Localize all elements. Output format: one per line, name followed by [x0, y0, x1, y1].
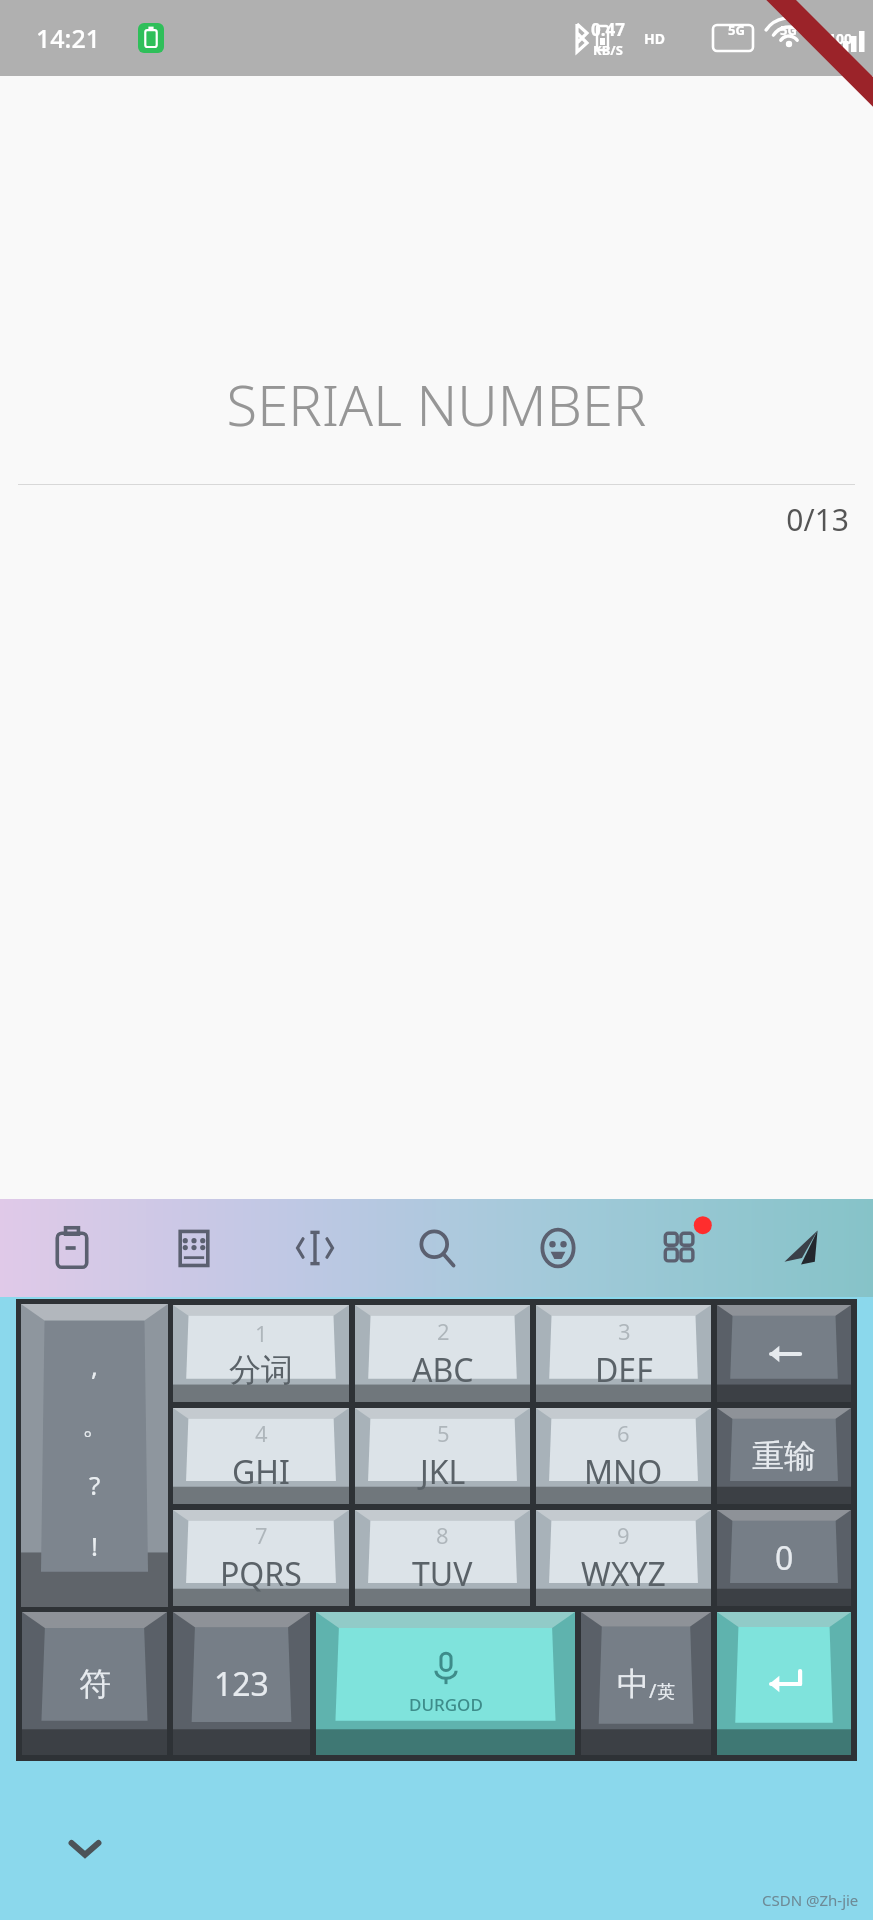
staticText: 2 [437, 1316, 450, 1346]
staticText: 。 [82, 1409, 108, 1442]
staticText: CSDN @Zh-jie [762, 1890, 859, 1910]
button[interactable]: 123 [173, 1612, 310, 1755]
button[interactable]: Search [407, 1218, 467, 1278]
button[interactable]: 1 [173, 1305, 349, 1402]
staticText: 重输 [752, 1436, 816, 1476]
staticText: 5G [728, 21, 745, 39]
staticText: 5G [780, 21, 797, 39]
button[interactable]: 6 [536, 1408, 711, 1504]
staticText: TUV [412, 1552, 473, 1596]
staticText: 3 [618, 1316, 631, 1346]
staticText: HD [644, 29, 665, 48]
button[interactable]: 重输 [717, 1408, 851, 1504]
button[interactable]: 符 [22, 1612, 167, 1755]
button[interactable]: 3 [536, 1305, 711, 1402]
staticText: 1 [255, 1318, 268, 1348]
staticText: 6 [617, 1418, 630, 1448]
staticText: 123 [214, 1662, 269, 1706]
staticText: SERIAL NUMBER [0, 366, 873, 442]
staticText: 4 [255, 1418, 268, 1448]
button[interactable]: DURGOD [316, 1612, 575, 1755]
button[interactable]: More options [650, 1218, 710, 1278]
staticText: 分词 [229, 1350, 293, 1390]
staticText: ABC [412, 1348, 474, 1392]
staticText: ! [91, 1528, 98, 1563]
button[interactable]: 8 [355, 1510, 530, 1606]
staticText: PQRS [220, 1552, 302, 1596]
staticText: / [649, 1677, 657, 1704]
staticText: 中 [617, 1664, 649, 1704]
button[interactable] [717, 1612, 851, 1755]
button[interactable]: 4 [173, 1408, 349, 1504]
staticText: 0/13 [0, 499, 849, 540]
staticText: 符 [79, 1664, 111, 1704]
staticText: 英 [657, 1681, 675, 1704]
button[interactable]: Send [771, 1218, 831, 1278]
staticText: 0.47 [591, 18, 625, 41]
staticText: , [91, 1348, 98, 1383]
staticText: 7 [255, 1520, 268, 1550]
button[interactable]: Keyboard settings [164, 1218, 224, 1278]
staticText: 9 [617, 1520, 630, 1550]
staticText: KB/S [593, 41, 623, 59]
staticText: JKL [420, 1450, 466, 1494]
staticText: WXYZ [581, 1552, 666, 1596]
button[interactable]: 2 [355, 1305, 530, 1402]
button[interactable]: 9 [536, 1510, 711, 1606]
staticText: DURGOD [409, 1693, 483, 1716]
button[interactable]: Emoji [528, 1218, 588, 1278]
staticText: 5 [437, 1418, 450, 1448]
staticText: 8 [436, 1520, 449, 1550]
staticText: MNO [584, 1450, 663, 1494]
staticText: ? [89, 1467, 101, 1502]
button[interactable]: 5 [355, 1408, 530, 1504]
button[interactable]: Clipboard [42, 1218, 102, 1278]
button[interactable]: 0 [717, 1510, 851, 1606]
button[interactable]: Edit text [285, 1218, 345, 1278]
button[interactable]: 7 [173, 1510, 349, 1606]
button[interactable] [717, 1305, 851, 1402]
staticText: 100 [828, 29, 853, 48]
button[interactable]: Hide keyboard [50, 1813, 120, 1883]
button[interactable]: , [21, 1304, 168, 1607]
staticText: DEF [595, 1348, 653, 1392]
staticText: GHI [232, 1450, 290, 1494]
staticText: 14:21 [36, 21, 101, 55]
staticText: 0 [775, 1536, 794, 1580]
button[interactable]: 中 [581, 1612, 711, 1755]
